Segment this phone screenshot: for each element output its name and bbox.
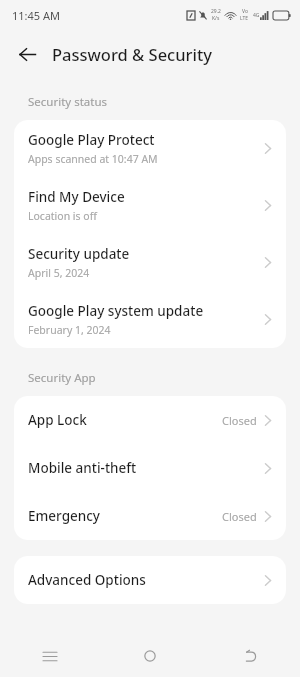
staticText: Apps scanned at 10:47 AM (28, 152, 158, 166)
staticText: February 1, 2024 (28, 323, 111, 337)
staticText: Security App (28, 370, 96, 386)
button[interactable]: Recent apps (0, 635, 100, 677)
staticText: Mobile anti-theft (28, 459, 264, 477)
button[interactable]: Emergency (14, 492, 286, 540)
button[interactable]: Mobile anti-theft (14, 444, 286, 492)
staticText: Security status (28, 94, 108, 110)
staticText: Closed (222, 413, 257, 428)
button[interactable]: Find My Device (14, 177, 286, 234)
staticText: LTE (240, 15, 249, 22)
staticText: 11:45 AM (12, 8, 60, 23)
button[interactable]: Back (13, 40, 41, 68)
button[interactable]: Back (200, 635, 300, 677)
staticText: Location is off (28, 209, 97, 223)
staticText: Google Play system update (28, 302, 204, 320)
staticText: April 5, 2024 (28, 266, 90, 280)
button[interactable]: Home (100, 635, 200, 677)
staticText: Find My Device (28, 188, 125, 206)
button[interactable]: App Lock (14, 396, 286, 444)
staticText: Emergency (28, 507, 222, 525)
staticText: Closed (222, 509, 257, 524)
staticText: Vo (242, 8, 248, 15)
staticText: 4G (253, 12, 260, 19)
staticText: Advanced Options (28, 571, 264, 589)
button[interactable]: Google Play system update (14, 291, 286, 348)
staticText: Password & Security (52, 43, 213, 65)
button[interactable]: Google Play Protect (14, 120, 286, 177)
button[interactable]: Security update (14, 234, 286, 291)
staticText: Google Play Protect (28, 131, 155, 149)
staticText: App Lock (28, 411, 222, 429)
staticText: 29.2 (211, 8, 221, 15)
staticText: Security update (28, 245, 130, 263)
button[interactable]: Advanced Options (14, 556, 286, 604)
staticText: K/s (212, 15, 220, 22)
